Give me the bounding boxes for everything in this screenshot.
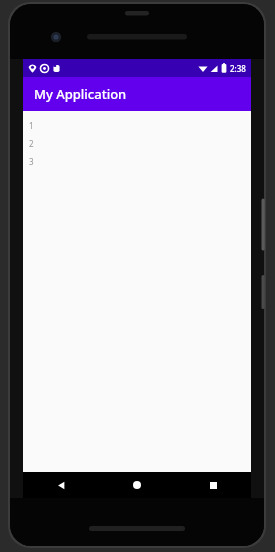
button[interactable]: 3 <box>29 152 251 170</box>
staticText: 1 <box>29 120 34 131</box>
button[interactable]: 1 <box>29 116 251 134</box>
staticText: 3 <box>29 156 34 167</box>
button[interactable]: Back <box>23 472 99 498</box>
button[interactable]: Home <box>99 472 175 498</box>
staticText: My Application <box>34 85 127 103</box>
staticText: 2 <box>29 138 34 149</box>
button[interactable]: 2 <box>29 134 251 152</box>
button[interactable]: Recent apps <box>175 472 251 498</box>
staticText: 2:38 <box>230 63 246 74</box>
